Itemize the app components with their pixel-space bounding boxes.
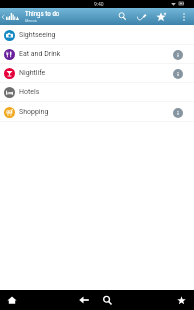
button[interactable]: Back bbox=[71, 290, 97, 310]
staticText: Things to do bbox=[25, 10, 60, 18]
staticText: Shopping bbox=[19, 108, 49, 116]
staticText: Sightseeing bbox=[19, 31, 56, 39]
staticText: 9:40 bbox=[94, 1, 104, 7]
staticText: Nightlife bbox=[19, 69, 46, 77]
button[interactable]: Info bbox=[166, 103, 194, 122]
button[interactable]: More options bbox=[177, 8, 190, 25]
button[interactable]: Sightseeing bbox=[0, 26, 194, 44]
button[interactable]: Add to favorites bbox=[151, 8, 171, 25]
button[interactable]: Favorites bbox=[168, 290, 194, 310]
button[interactable]: Info bbox=[166, 64, 194, 83]
button[interactable]: Check in bbox=[131, 8, 151, 25]
button[interactable]: Search bbox=[94, 290, 120, 310]
button[interactable]: Search bbox=[112, 8, 132, 25]
button[interactable]: Home bbox=[0, 290, 25, 310]
button[interactable]: Hotels bbox=[0, 83, 194, 101]
staticText: Hotels bbox=[19, 88, 40, 96]
staticText: Eat and Drink bbox=[19, 50, 61, 58]
button[interactable]: Info bbox=[166, 45, 194, 64]
button[interactable]: Shopping bbox=[0, 103, 194, 121]
staticText: Mecca bbox=[25, 18, 37, 23]
button[interactable]: Eat and Drink bbox=[0, 45, 194, 63]
button[interactable]: Nightlife bbox=[0, 64, 194, 82]
button[interactable]: Navigate up bbox=[0, 8, 25, 25]
